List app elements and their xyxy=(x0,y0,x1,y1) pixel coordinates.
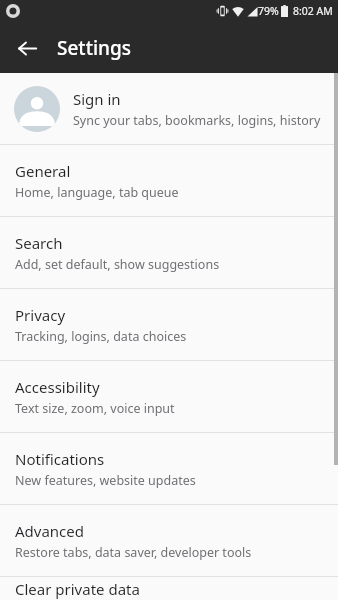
staticText: Settings xyxy=(57,35,131,61)
button[interactable]: Search xyxy=(0,217,338,288)
staticText: Notifications xyxy=(15,449,105,469)
button[interactable]: Clear private data xyxy=(0,577,338,600)
button[interactable]: General xyxy=(0,145,338,216)
staticText: Clear private data xyxy=(15,579,140,599)
button[interactable]: Advanced xyxy=(0,505,338,576)
button[interactable]: Accessibility xyxy=(0,361,338,432)
button[interactable]: Back xyxy=(8,29,46,67)
staticText: Tracking, logins, data choices xyxy=(15,328,187,345)
staticText: Home, language, tab queue xyxy=(15,184,179,201)
staticText: General xyxy=(15,161,71,181)
staticText: Sign in xyxy=(73,89,121,109)
button[interactable]: Notifications xyxy=(0,433,338,504)
staticText: Add, set default, show suggestions xyxy=(15,256,220,273)
staticText: Advanced xyxy=(15,521,85,541)
staticText: Restore tabs, data saver, developer tool… xyxy=(15,544,252,561)
button[interactable]: Privacy xyxy=(0,289,338,360)
staticText: Privacy xyxy=(15,305,66,325)
staticText: Search xyxy=(15,233,63,253)
staticText: 8:02 AM xyxy=(293,4,333,18)
staticText: New features, website updates xyxy=(15,472,196,489)
button[interactable]: Sign in xyxy=(0,73,338,144)
staticText: Text size, zoom, voice input xyxy=(15,400,175,417)
staticText: Accessibility xyxy=(15,377,100,397)
staticText: 79% xyxy=(258,4,279,18)
staticText: Sync your tabs, bookmarks, logins, histo… xyxy=(73,112,321,129)
